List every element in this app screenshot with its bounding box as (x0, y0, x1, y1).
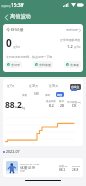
staticText: 中国移动 (1, 5, 11, 8)
staticText: 1-2 (67, 44, 73, 49)
staticText: 体重 (22, 93, 28, 96)
button[interactable]: 去称体重 (33, 61, 53, 68)
button[interactable]: BMI (33, 91, 40, 97)
staticText: 今日记录 (6, 27, 24, 33)
button[interactable]: 历史记录 (66, 28, 81, 32)
staticText: 体重记录 (20, 165, 36, 170)
staticText: 腰围 (57, 93, 63, 96)
staticText: 88.2 (5, 99, 22, 111)
button[interactable]: 腰围 (56, 92, 64, 97)
button[interactable]: 近90天 (48, 83, 60, 89)
button[interactable]: Back (1, 12, 11, 22)
staticText: 88.2 (59, 168, 66, 172)
button[interactable]: 去测量 (64, 61, 81, 68)
staticText: 去记录 (11, 63, 20, 67)
staticText: 2022-07-24 15:30 (20, 162, 40, 165)
staticText: 体重 kg (59, 164, 68, 167)
button[interactable]: 去记录 (5, 61, 22, 68)
staticText: 正常范围参考值 (60, 38, 81, 42)
staticText: 近90天 (49, 84, 59, 88)
button[interactable]: 近30天 (28, 83, 40, 89)
staticText: 历史记录 (66, 28, 78, 32)
staticText: 0 (6, 36, 12, 50)
staticText: 近7天 (7, 84, 15, 88)
staticText: 去测量 (70, 63, 79, 67)
staticText: 8.2 (49, 103, 54, 108)
staticText: BMI kg (72, 164, 80, 167)
staticText: CK (72, 103, 77, 108)
staticText: 最低体重 (46, 100, 56, 103)
staticText: 28.8 (72, 168, 79, 172)
staticText: 次/日 (13, 45, 21, 49)
staticText: 平均体重(kg) (67, 100, 81, 103)
staticText: 最高 (59, 100, 64, 103)
button[interactable]: 自定义 (70, 84, 81, 90)
staticText: 体脂 (45, 93, 51, 96)
staticText: kg (22, 106, 25, 110)
staticText: 今日还没有记录哦，快去记录一下吧 (6, 55, 53, 59)
staticText: 近30天 (29, 84, 39, 88)
staticText: 次/日 (73, 45, 81, 49)
button[interactable]: 近7天 (6, 83, 16, 89)
staticText: 28 (60, 103, 64, 108)
staticText: 离值波动 (10, 13, 31, 20)
button[interactable]: 体重 (21, 92, 29, 97)
staticText: 记录 (20, 170, 25, 173)
button[interactable]: 体脂 (44, 92, 52, 97)
staticText: 15:38 (11, 2, 24, 9)
staticText: BMI (34, 92, 39, 96)
button[interactable]: 2022-07-24 15:30 (3, 158, 83, 177)
staticText: 自定义 (71, 85, 80, 89)
staticText: 去称体重 (39, 63, 51, 67)
staticText: 2022-07 (6, 149, 20, 154)
